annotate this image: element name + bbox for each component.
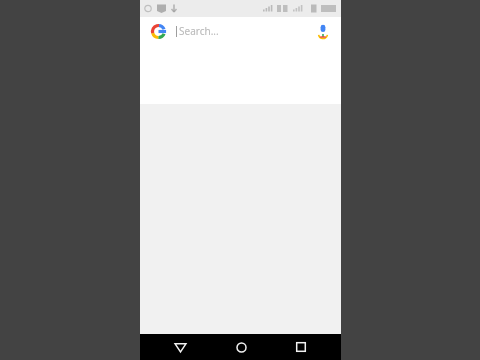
staticText: Search... bbox=[179, 24, 219, 38]
other: Google bbox=[151, 24, 166, 39]
button[interactable]: Voice search bbox=[313, 21, 333, 41]
button[interactable]: Google bbox=[140, 17, 341, 45]
button[interactable]: Back bbox=[159, 334, 201, 360]
button[interactable]: Home bbox=[220, 334, 262, 360]
button[interactable]: Recent apps bbox=[280, 334, 322, 360]
